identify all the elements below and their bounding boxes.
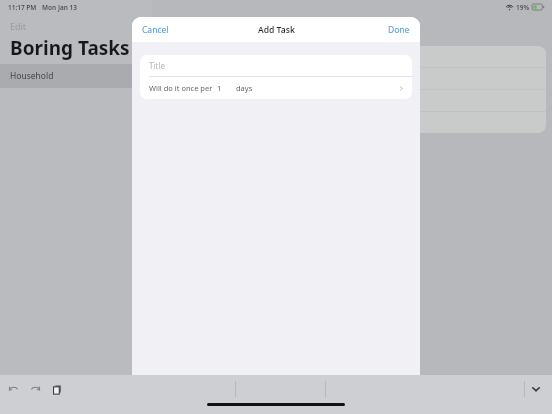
button[interactable]: Title <box>140 55 412 76</box>
staticText: Household <box>10 70 54 82</box>
staticText: 11:17 PM <box>8 3 37 12</box>
staticText: Add Task <box>258 24 295 36</box>
button[interactable]: Household <box>0 64 152 88</box>
button[interactable]: Paste <box>50 382 64 396</box>
staticText: days <box>236 83 253 93</box>
button[interactable] <box>174 112 546 133</box>
staticText: Edit <box>10 20 27 32</box>
staticText: Title <box>149 60 165 71</box>
staticText: Cancel <box>142 24 169 36</box>
staticText: Done <box>388 24 410 36</box>
button[interactable] <box>174 68 546 89</box>
staticText: Boring Tasks <box>10 35 130 61</box>
button[interactable] <box>174 46 546 67</box>
button[interactable]: Redo <box>28 382 42 396</box>
staticText: 19% <box>516 3 530 12</box>
button[interactable]: Hide keyboard <box>528 381 544 397</box>
button[interactable]: Undo <box>6 382 20 396</box>
staticText: Household <box>348 17 394 29</box>
button[interactable]: Cancel <box>132 19 179 41</box>
button[interactable]: Edit <box>0 18 152 34</box>
button[interactable]: Done <box>378 19 420 41</box>
staticText: 1 <box>217 83 222 93</box>
staticText: Mon Jan 13 <box>42 3 77 12</box>
button[interactable]: Will do it once per <box>140 77 412 99</box>
button[interactable] <box>174 90 546 111</box>
staticText: Will do it once per <box>149 83 213 93</box>
